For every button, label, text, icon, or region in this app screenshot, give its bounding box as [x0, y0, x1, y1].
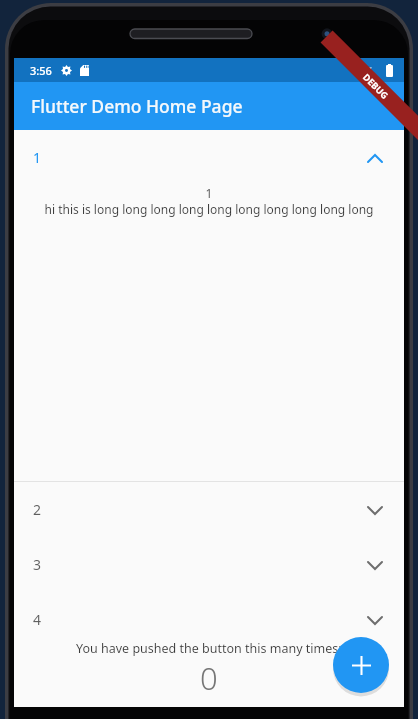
staticText: Flutter Demo Home Page [31, 94, 243, 118]
staticText: 3:56 [30, 63, 52, 78]
button[interactable]: 2 [14, 482, 404, 537]
button[interactable]: 4 [14, 592, 404, 647]
button[interactable]: 1 [14, 130, 404, 185]
staticText: 4 [33, 610, 42, 629]
button[interactable]: Expand [362, 552, 388, 578]
button[interactable]: Expand [362, 497, 388, 523]
staticText: You have pushed the button this many tim… [76, 640, 342, 657]
staticText: 2 [33, 500, 42, 519]
button[interactable]: Expand [362, 607, 388, 633]
button[interactable]: Increment counter [333, 637, 389, 693]
button[interactable]: 3 [14, 537, 404, 592]
button[interactable]: Collapse [362, 145, 388, 171]
staticText: 1 [14, 185, 404, 201]
staticText: hi this is long long long long long long… [14, 201, 404, 217]
staticText: 1 [33, 148, 42, 167]
staticText: 0 [200, 657, 218, 699]
staticText: 3 [33, 555, 42, 574]
